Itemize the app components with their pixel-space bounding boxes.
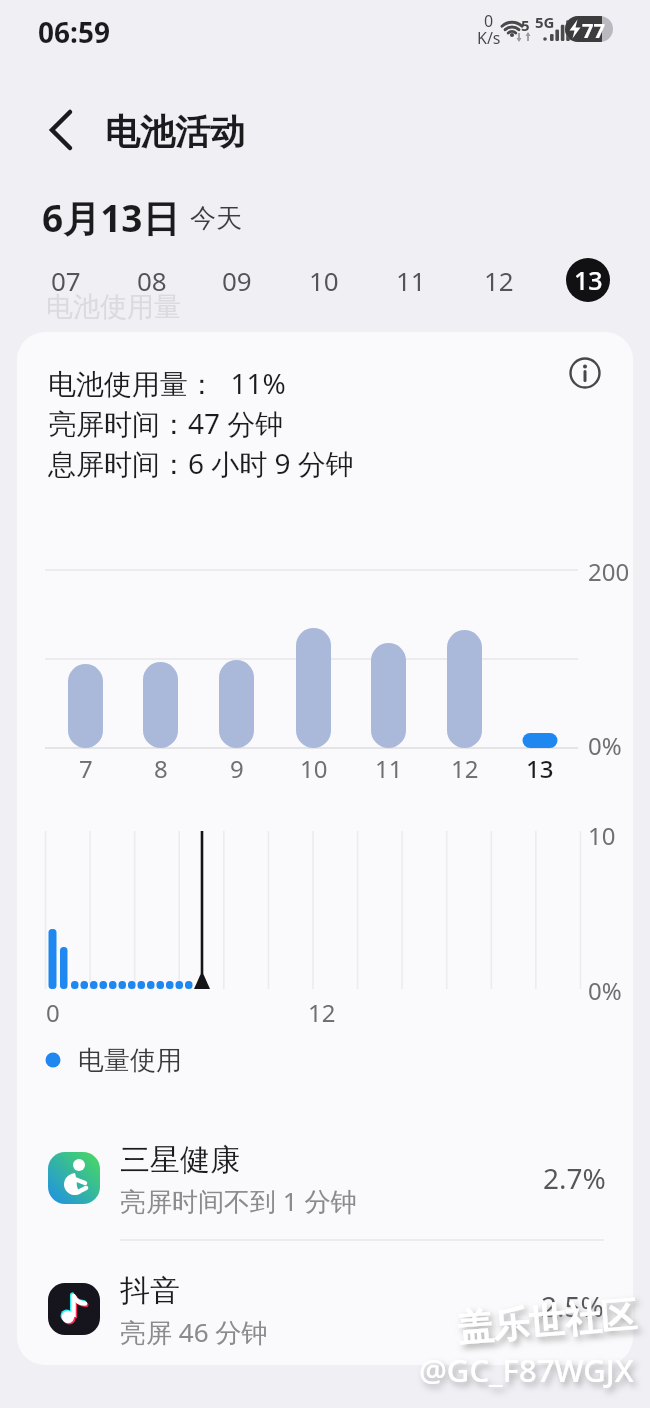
staticText: 12 bbox=[484, 263, 514, 298]
staticText: 电池活动 bbox=[105, 110, 245, 154]
staticText: 亮屏 46 分钟 bbox=[120, 1314, 268, 1350]
button[interactable] bbox=[563, 351, 607, 395]
button[interactable] bbox=[36, 104, 88, 156]
staticText: 09 bbox=[222, 263, 252, 298]
staticText: 息屏时间：6 小时 9 分钟 bbox=[48, 444, 354, 482]
staticText: 6月13日 bbox=[42, 192, 180, 243]
staticText: 5G bbox=[535, 12, 555, 32]
staticText: 11 bbox=[375, 752, 403, 785]
staticText: 电池使用量 bbox=[46, 290, 181, 324]
staticText: 今天 bbox=[190, 202, 242, 235]
button[interactable]: 10 bbox=[302, 258, 346, 302]
staticText: 0% bbox=[588, 974, 622, 1007]
staticText: 10 bbox=[309, 263, 339, 298]
staticText: 0 bbox=[46, 996, 60, 1029]
staticText: 13 bbox=[526, 752, 554, 785]
staticText: 0% bbox=[588, 729, 622, 762]
staticText: 10 bbox=[300, 752, 328, 785]
staticText: K/s bbox=[477, 27, 501, 49]
staticText: 电量使用 bbox=[78, 1044, 182, 1077]
button[interactable]: 07 bbox=[44, 258, 88, 302]
staticText: 11 bbox=[396, 263, 426, 298]
staticText: 5 bbox=[521, 15, 530, 35]
staticText: 13 bbox=[574, 263, 603, 297]
staticText: 亮屏时间不到 1 分钟 bbox=[120, 1183, 357, 1219]
button[interactable]: 12 bbox=[477, 258, 521, 302]
button[interactable]: 09 bbox=[215, 258, 259, 302]
staticText: 2.7% bbox=[543, 1159, 606, 1197]
button[interactable]: 13 bbox=[566, 258, 610, 302]
staticText: 12 bbox=[451, 752, 479, 785]
staticText: 8 bbox=[154, 752, 168, 785]
staticText: 三星健康 bbox=[120, 1141, 240, 1179]
staticText: 08 bbox=[137, 263, 167, 298]
staticText: 12 bbox=[308, 996, 336, 1029]
button[interactable]: 08 bbox=[130, 258, 174, 302]
button[interactable]: 11 bbox=[389, 258, 433, 302]
staticText: 亮屏时间：47 分钟 bbox=[48, 404, 284, 442]
button[interactable] bbox=[17, 1122, 633, 1240]
staticText: 200 bbox=[588, 555, 630, 588]
staticText: 抖音 bbox=[120, 1272, 180, 1310]
staticText: 7 bbox=[79, 752, 93, 785]
staticText: 10 bbox=[588, 819, 616, 852]
staticText: 77 bbox=[582, 17, 605, 44]
staticText: 2.5% bbox=[541, 1287, 604, 1325]
staticText: @GC_F87WGJX bbox=[419, 1349, 634, 1391]
staticText: 9 bbox=[230, 752, 244, 785]
staticText: 07 bbox=[51, 263, 81, 298]
staticText: 盖乐世社区 bbox=[455, 1292, 638, 1351]
staticText: 0 bbox=[484, 10, 494, 32]
staticText: 06:59 bbox=[38, 13, 110, 51]
staticText: 电池使用量： 11% bbox=[48, 364, 286, 402]
button[interactable] bbox=[17, 1241, 633, 1365]
